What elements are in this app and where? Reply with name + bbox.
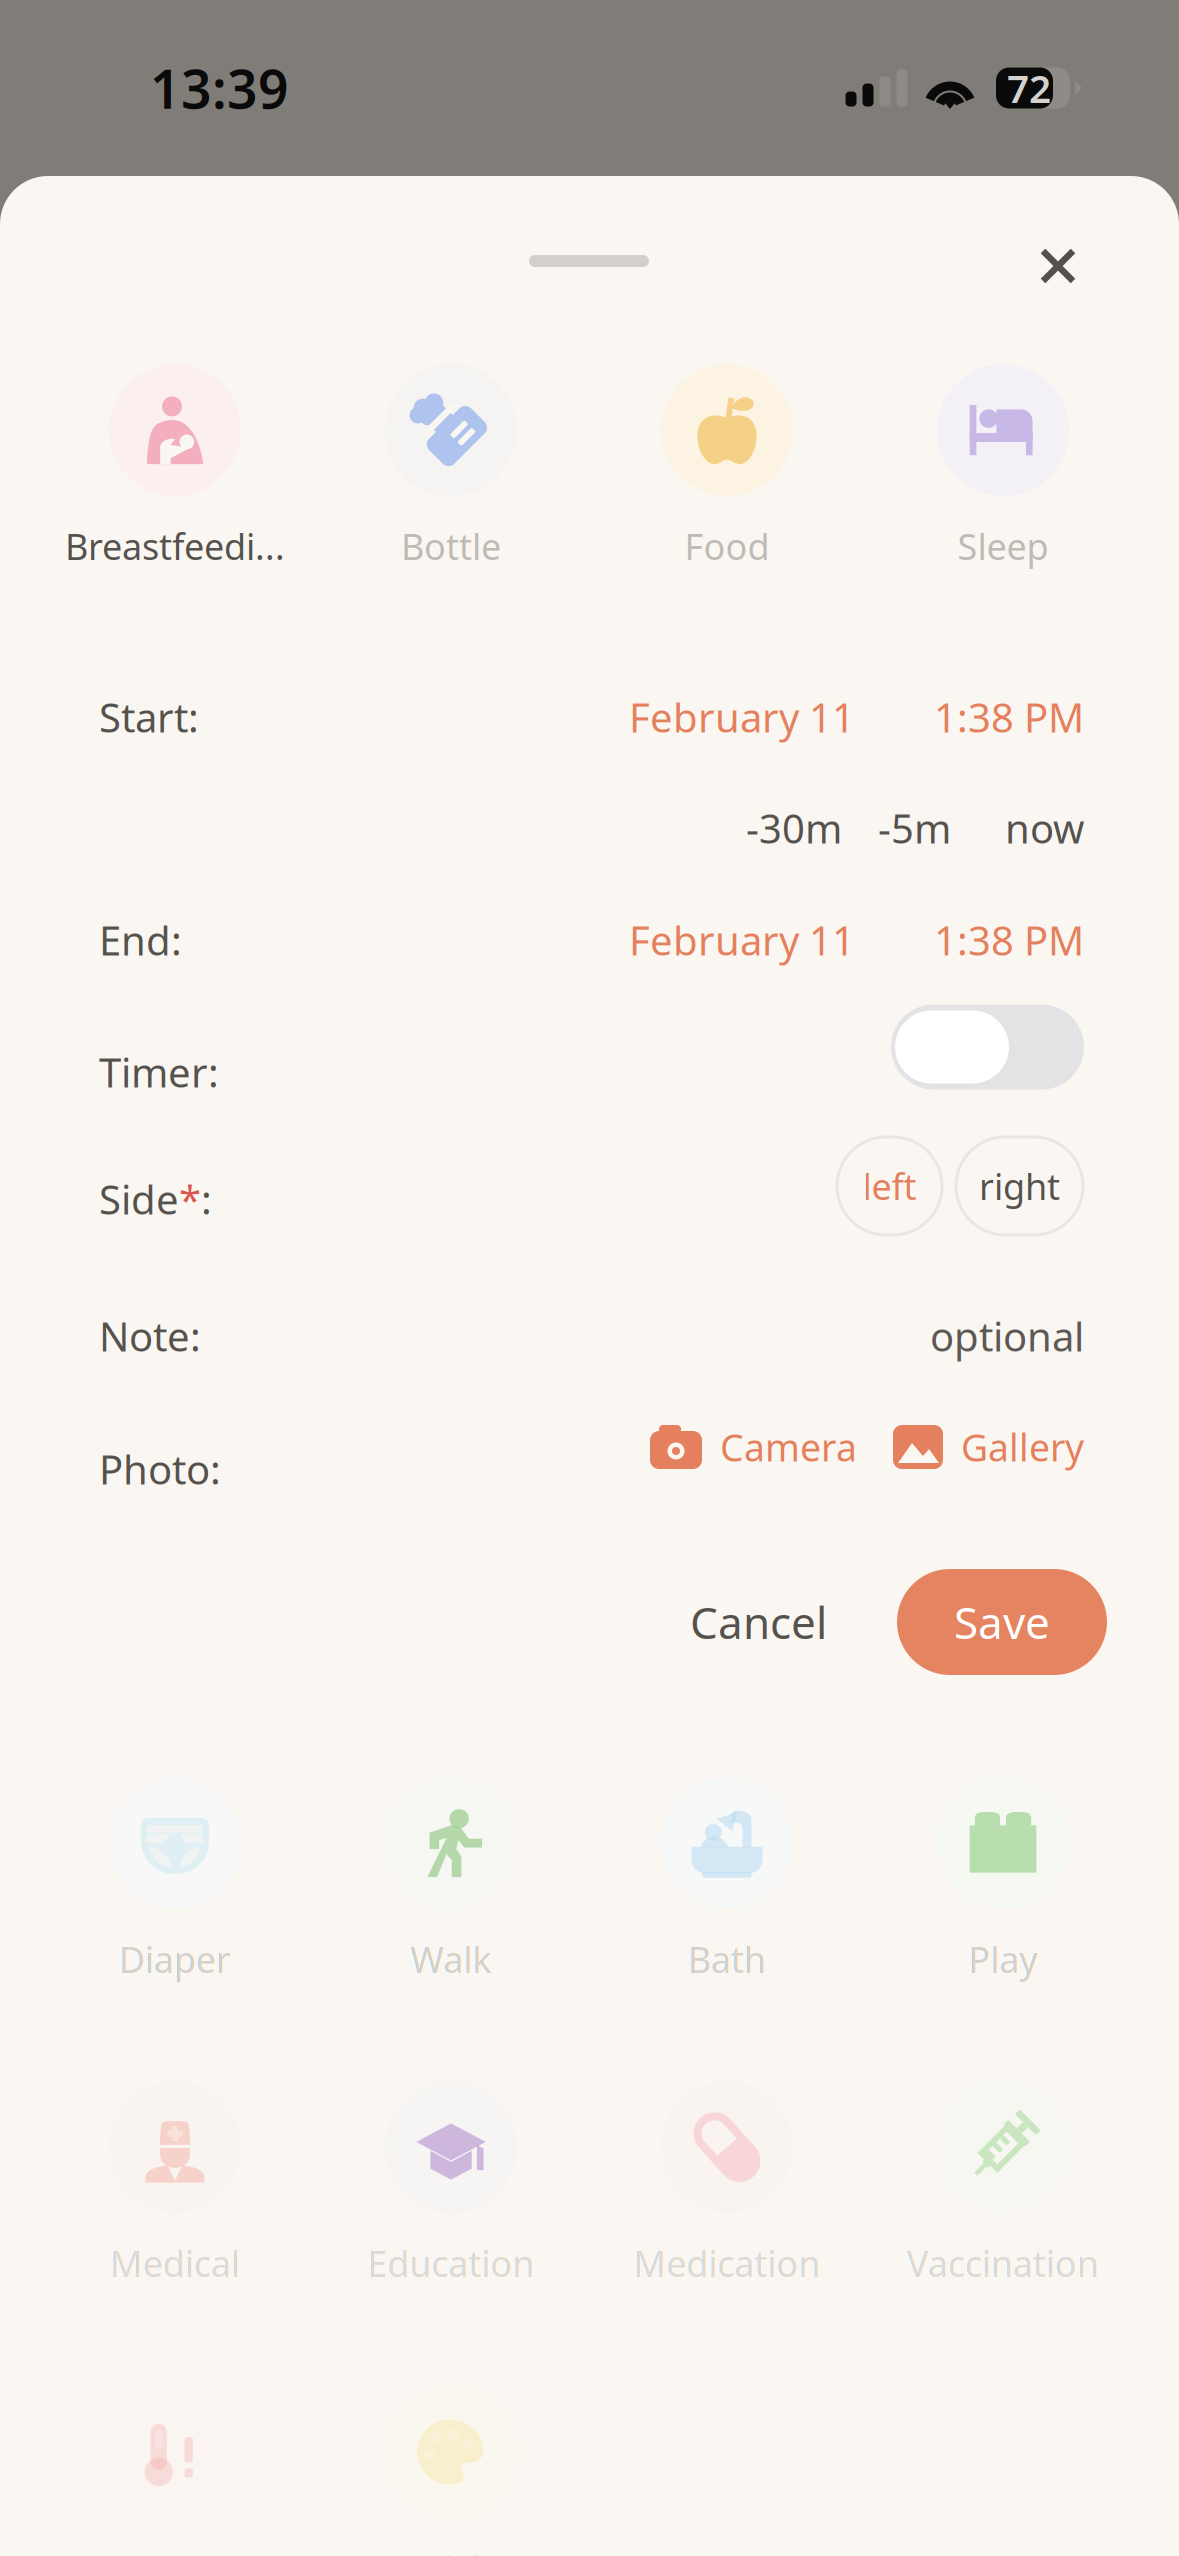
staticText: Start: — [99, 690, 199, 743]
staticText: now — [1005, 801, 1084, 854]
staticText: Bath — [688, 1935, 766, 1983]
staticText: Camera — [720, 1422, 857, 1472]
staticText: optional — [930, 1309, 1084, 1362]
staticText: February 11 — [629, 690, 855, 743]
staticText: right — [979, 1162, 1060, 1210]
staticText: Vaccination — [907, 2239, 1099, 2287]
button[interactable]: -5m — [842, 801, 951, 854]
staticText: February 11 — [629, 913, 855, 966]
staticText: -5m — [878, 801, 951, 854]
staticText: : — [201, 1172, 212, 1225]
button[interactable]: Close — [1012, 220, 1104, 312]
button[interactable]: Gallery — [857, 1422, 1084, 1472]
button[interactable]: optional — [930, 1309, 1084, 1362]
staticText: 72 — [1007, 62, 1051, 114]
button[interactable]: Cancel — [690, 1593, 827, 1651]
button[interactable]: Medication — [589, 2084, 865, 2284]
staticText: Walk — [410, 1935, 491, 1983]
staticText: Gallery — [961, 1422, 1084, 1472]
button[interactable]: Medical — [37, 2084, 313, 2284]
button[interactable]: Timer toggle — [891, 1004, 1084, 1089]
staticText: Medication — [633, 2239, 820, 2287]
staticText: 1:38 PM — [934, 913, 1084, 966]
button[interactable]: Camera — [650, 1422, 857, 1472]
button[interactable]: left — [837, 1137, 942, 1235]
staticText: Food — [684, 522, 769, 570]
staticText: End: — [99, 913, 182, 966]
staticText: Photo: — [99, 1442, 221, 1495]
button[interactable]: Play — [865, 1780, 1141, 1980]
button[interactable]: now — [951, 801, 1084, 854]
button[interactable]: right — [956, 1137, 1083, 1235]
staticText: Sleep — [957, 522, 1048, 570]
staticText: Note: — [99, 1309, 201, 1362]
staticText: -30m — [746, 801, 842, 854]
button[interactable]: -30m — [746, 801, 842, 854]
button[interactable]: Food — [589, 367, 865, 567]
staticText: Medical — [110, 2239, 240, 2287]
button[interactable]: February 11 — [629, 913, 855, 966]
button[interactable]: Bath — [589, 1780, 865, 1980]
staticText: Save — [954, 1593, 1050, 1651]
staticText: Play — [968, 1935, 1037, 1983]
button[interactable]: Education — [313, 2084, 589, 2284]
button[interactable]: Bottle — [313, 367, 589, 567]
button[interactable]: Walk — [313, 1780, 589, 1980]
staticText: Breastfeedi... — [65, 522, 285, 570]
button[interactable]: Temperature — [37, 2389, 313, 2556]
button[interactable]: Vaccination — [865, 2084, 1141, 2284]
button[interactable]: Activity — [313, 2389, 589, 2556]
staticText: 13:39 — [150, 53, 289, 123]
button[interactable]: Diaper — [37, 1780, 313, 1980]
button[interactable]: Sleep — [865, 367, 1141, 567]
staticText: Side — [99, 1172, 179, 1225]
staticText: Education — [367, 2239, 534, 2287]
button[interactable]: Breastfeedi... — [37, 367, 313, 567]
button[interactable]: 1:38 PM — [855, 690, 1084, 743]
staticText: Bottle — [401, 522, 501, 570]
staticText: * — [179, 1172, 201, 1225]
staticText: Cancel — [690, 1593, 827, 1651]
staticText: 1:38 PM — [934, 690, 1084, 743]
button[interactable]: Save — [827, 1569, 1107, 1675]
staticText: Diaper — [119, 1935, 231, 1983]
button[interactable]: 1:38 PM — [855, 913, 1084, 966]
button[interactable]: February 11 — [629, 690, 855, 743]
staticText: left — [862, 1162, 916, 1210]
staticText: Timer: — [99, 1045, 219, 1098]
